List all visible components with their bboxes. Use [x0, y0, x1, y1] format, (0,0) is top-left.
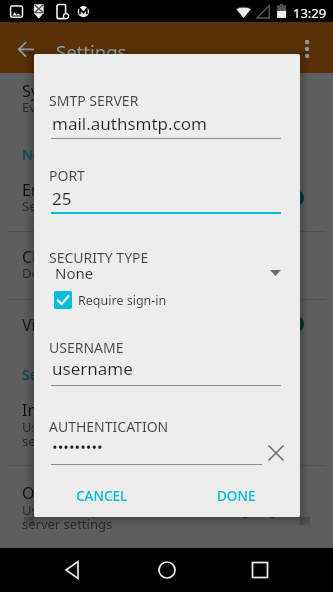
staticText: Every 15 minutes — [22, 98, 127, 116]
staticText: mail.authsmtp.com — [52, 112, 207, 135]
button[interactable]: Clear — [261, 438, 291, 468]
button[interactable]: More options — [295, 30, 319, 66]
button[interactable]: CANCEL — [68, 481, 136, 511]
staticText: Sync frequency — [22, 80, 136, 102]
staticText: username — [52, 357, 133, 380]
button[interactable]: DONE — [209, 481, 264, 511]
staticText: CANCEL — [76, 487, 128, 505]
button[interactable]: Email notifications — [0, 170, 333, 224]
staticText: server settings — [22, 515, 113, 533]
button[interactable]: Navigate up — [14, 37, 38, 61]
staticText: 13:29 — [293, 4, 327, 22]
staticText: Require sign-in — [78, 292, 167, 309]
staticText: PORT — [49, 166, 85, 185]
staticText: AUTHENTICATION — [49, 417, 169, 436]
button[interactable]: Security type — [55, 262, 281, 284]
button[interactable]: Sync frequency — [0, 71, 333, 125]
staticText: Send notification when email arrives — [22, 197, 244, 215]
button[interactable]: Toggle — [270, 314, 304, 334]
staticText: Username, password, and other outgoing — [22, 501, 278, 519]
staticText: Settings — [56, 39, 127, 64]
staticText: 25 — [52, 187, 72, 210]
staticText: server settings — [22, 432, 113, 450]
staticText: DONE — [217, 487, 256, 505]
staticText: SMTP SERVER — [49, 91, 139, 110]
staticText: USERNAME — [49, 338, 124, 357]
button[interactable]: Outgoing settings — [0, 473, 333, 545]
button[interactable]: Back — [53, 550, 93, 590]
button[interactable]: Incoming settings — [0, 390, 333, 462]
staticText: Email notifications — [22, 179, 161, 201]
staticText: Notifications — [22, 145, 108, 164]
staticText: Incoming settings — [22, 399, 158, 421]
button[interactable]: Toggle — [270, 188, 304, 208]
button[interactable]: Choose ringtone — [0, 237, 333, 291]
button[interactable]: Home — [147, 550, 187, 590]
staticText: SECURITY TYPE — [49, 248, 149, 267]
button[interactable]: Require sign-in — [54, 291, 173, 309]
staticText: Username, password, and other incoming — [22, 418, 279, 436]
staticText: Vibrate — [22, 314, 76, 336]
staticText: Outgoing settings — [22, 482, 158, 504]
staticText: Choose ringtone — [22, 246, 148, 268]
staticText: Default ringtone — [22, 264, 123, 282]
button[interactable]: Recent apps — [240, 550, 280, 590]
staticText: None — [55, 263, 94, 283]
staticText: Server settings — [22, 365, 123, 384]
staticText: ••••••••• — [52, 437, 103, 457]
button[interactable]: Vibrate — [0, 305, 333, 345]
